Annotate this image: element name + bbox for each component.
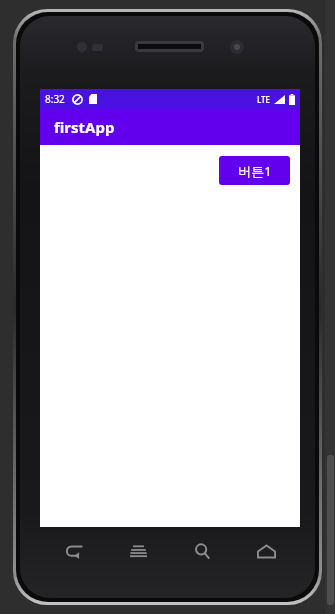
staticText: LTE — [257, 94, 271, 105]
button[interactable]: 버튼1 — [219, 156, 290, 185]
button[interactable]: Search — [170, 527, 234, 575]
button[interactable]: Home — [234, 527, 298, 575]
button[interactable]: Menu — [106, 527, 170, 575]
staticText: firstApp — [54, 117, 115, 137]
button[interactable]: Back — [42, 527, 106, 575]
staticText: 버튼1 — [238, 162, 272, 180]
staticText: 8:32 — [45, 92, 65, 106]
